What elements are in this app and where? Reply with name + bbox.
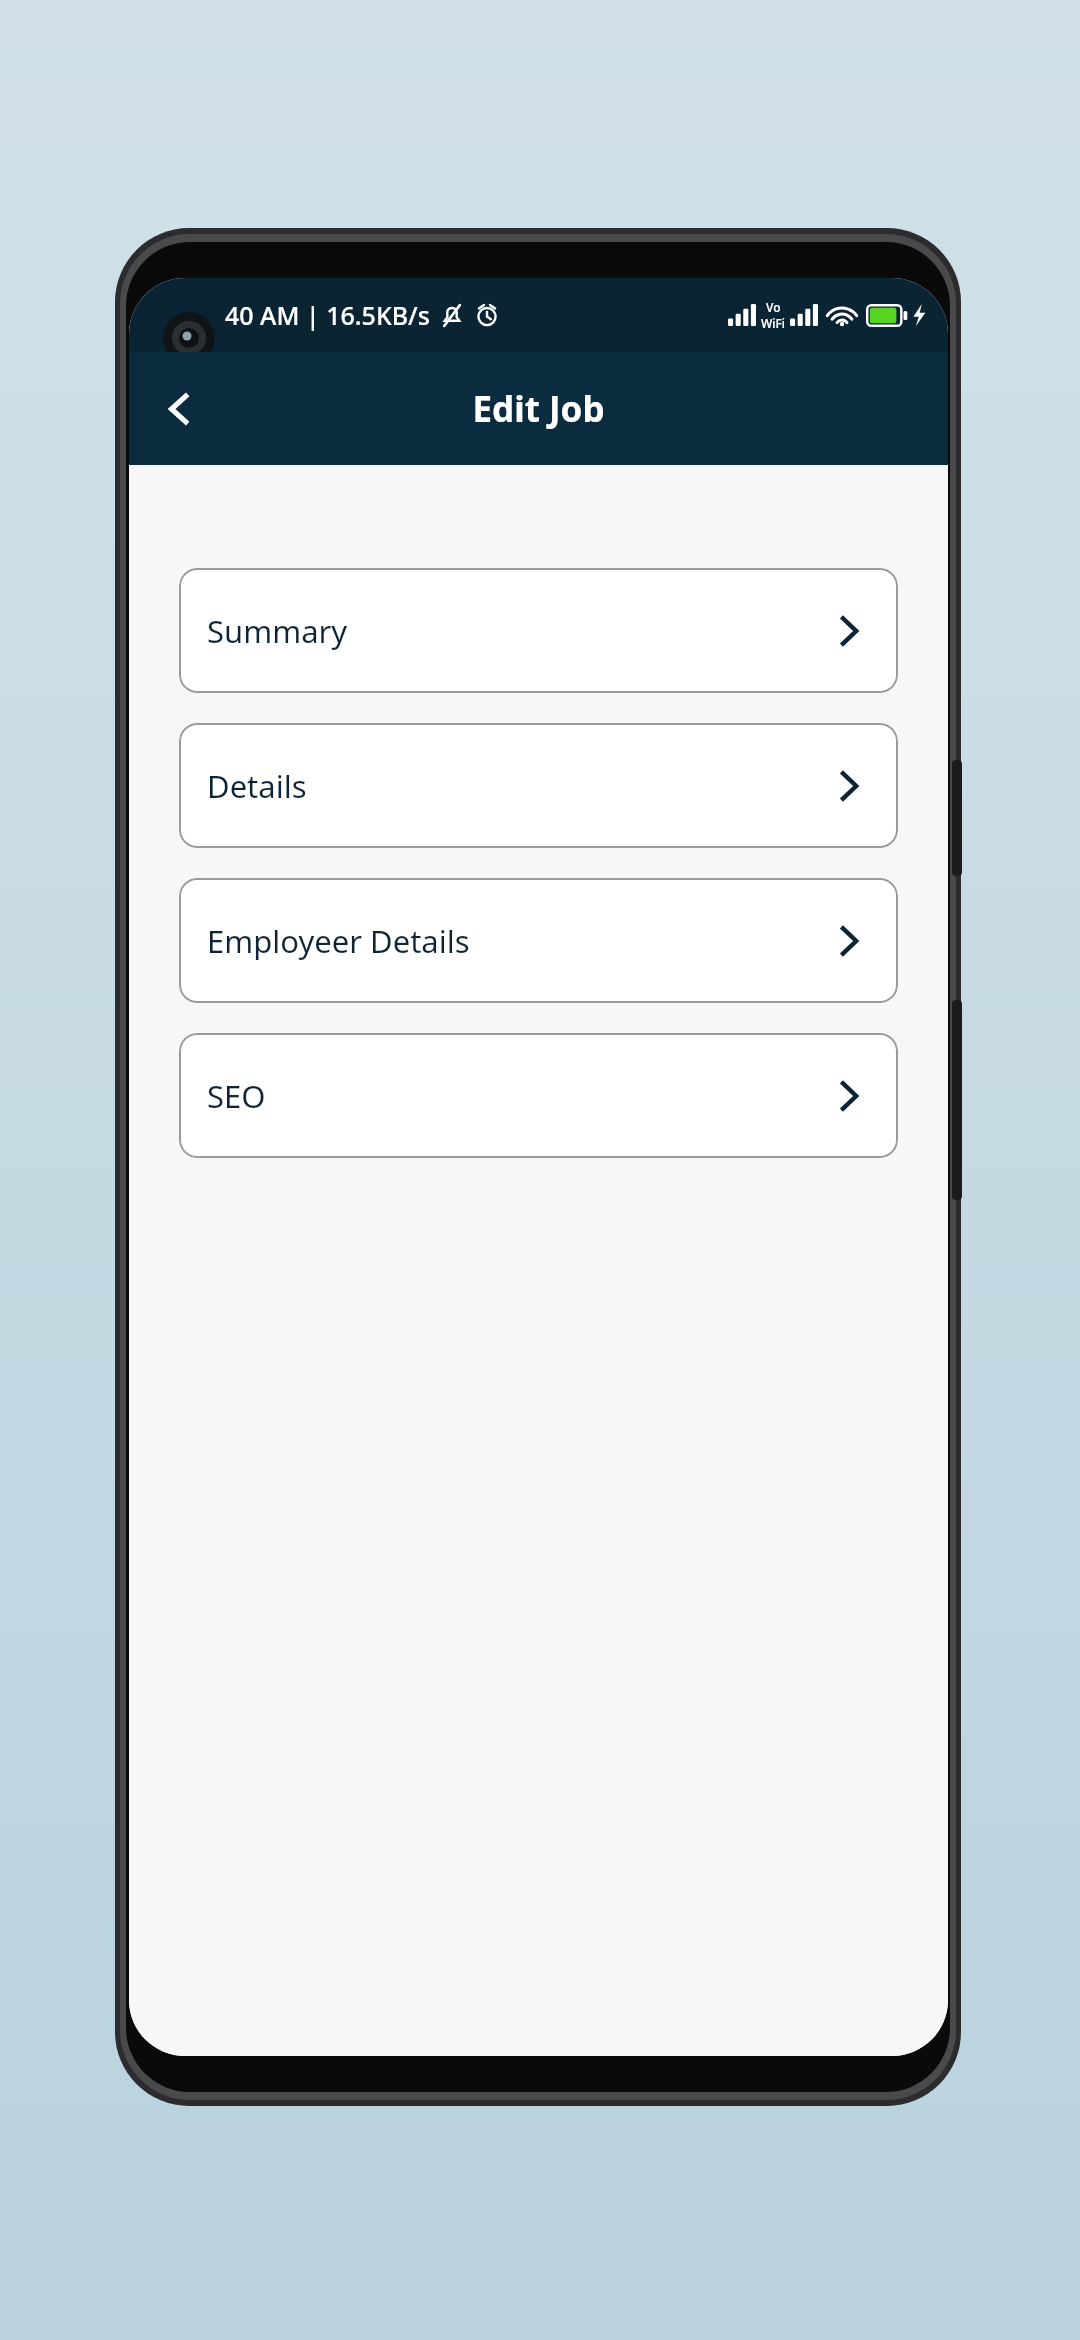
button[interactable]: Employeer Details — [179, 878, 898, 1003]
staticText: Summary — [207, 610, 348, 652]
button[interactable]: Summary — [179, 568, 898, 693]
staticText: Employeer Details — [207, 920, 470, 962]
staticText: 40 AM | 16.5KB/s — [225, 298, 430, 332]
staticText: SEO — [207, 1075, 266, 1117]
staticText: Vo — [766, 299, 781, 315]
staticText: WiFi — [761, 315, 786, 331]
staticText: Edit Job — [472, 385, 605, 433]
button[interactable]: SEO — [179, 1033, 898, 1158]
button[interactable]: Details — [179, 723, 898, 848]
staticText: Details — [207, 765, 307, 807]
button[interactable]: Back — [147, 377, 211, 441]
